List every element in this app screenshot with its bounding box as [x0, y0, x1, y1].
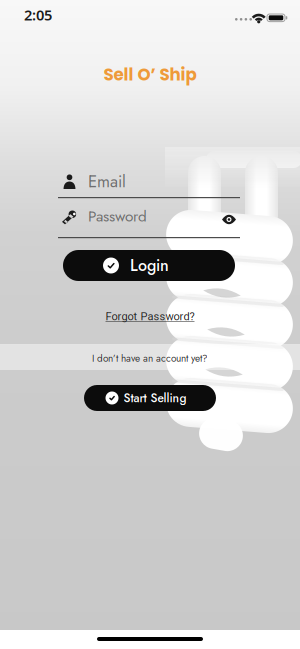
staticText: Sell O’ Ship — [103, 63, 196, 86]
staticText: Email — [88, 169, 126, 194]
staticText: Password — [88, 205, 147, 227]
staticText: 2:05 — [24, 5, 52, 24]
staticText: Login — [130, 254, 169, 277]
button[interactable]: Forgot Password? — [105, 310, 194, 323]
button[interactable]: Show password — [222, 214, 236, 224]
staticText: Start Selling — [123, 389, 186, 407]
staticText: I don’t have an account yet? — [92, 351, 208, 365]
staticText: Forgot Password? — [105, 310, 194, 323]
button[interactable]: Start Selling — [84, 385, 216, 411]
button[interactable]: Login — [63, 250, 235, 281]
